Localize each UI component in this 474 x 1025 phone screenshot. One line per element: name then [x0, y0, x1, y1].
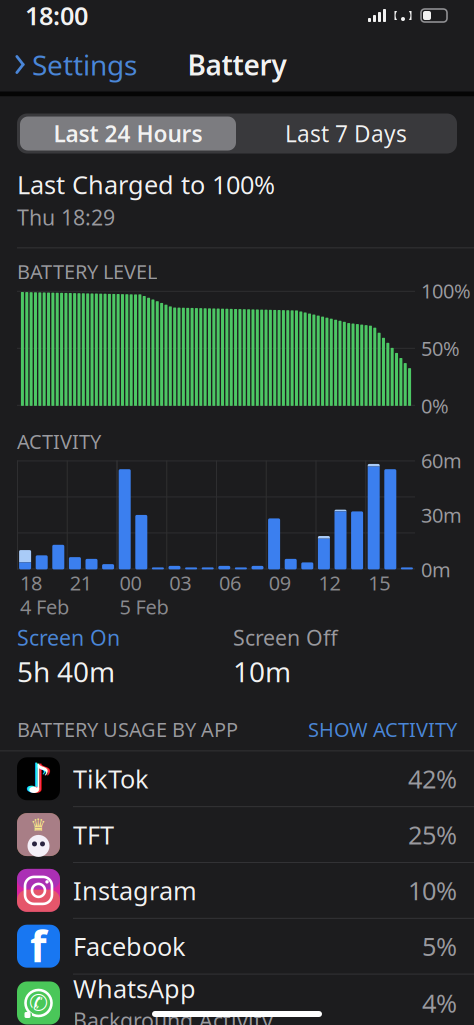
staticText: 25% — [408, 818, 457, 851]
staticText: Battery — [187, 46, 286, 83]
staticText: TikTok — [73, 762, 149, 796]
button[interactable]: Last 24 Hours — [20, 116, 236, 150]
staticText: 21 — [70, 569, 92, 596]
staticText: 4% — [422, 986, 457, 1020]
staticText: 10% — [408, 874, 457, 907]
staticText: BATTERY USAGE BY APP — [17, 716, 238, 742]
staticText: 18 — [20, 569, 42, 596]
staticText: 18:00 — [25, 0, 88, 32]
button[interactable]: ♪ — [0, 751, 474, 806]
staticText: Instagram — [73, 874, 197, 907]
staticText: Last 7 Days — [285, 118, 407, 149]
staticText: 09 — [269, 569, 291, 596]
staticText: 50% — [421, 335, 460, 362]
button[interactable]: f — [0, 918, 474, 974]
button[interactable]: ♛ — [0, 806, 474, 862]
staticText: Background Activity — [73, 1006, 273, 1025]
staticText: 00 — [119, 569, 141, 596]
staticText: ♪ — [23, 755, 49, 800]
staticText: Facebook — [73, 929, 186, 963]
staticText: 5 Feb — [119, 593, 168, 620]
staticText: Screen Off — [233, 623, 338, 652]
staticText: TFT — [73, 818, 114, 851]
button[interactable]: SHOW ACTIVITY — [308, 716, 457, 742]
staticText: WhatsApp — [73, 971, 196, 1005]
staticText: Screen On — [17, 623, 120, 652]
button[interactable]: Last 7 Days — [238, 116, 454, 150]
staticText: ✆ — [29, 990, 48, 1016]
staticText: ACTIVITY — [17, 428, 101, 454]
staticText: ♪ — [25, 756, 51, 801]
staticText: 06 — [219, 569, 241, 596]
staticText: 0% — [421, 393, 449, 419]
staticText: ♪ — [27, 756, 53, 801]
staticText: 12 — [318, 569, 340, 596]
staticText: Settings — [32, 46, 137, 83]
staticText: f — [30, 917, 47, 974]
staticText: ♛ — [30, 815, 46, 835]
staticText: 15 — [368, 569, 390, 596]
staticText: 5h 40m — [17, 653, 115, 690]
staticText: 10m — [233, 653, 291, 690]
button[interactable]: Instagram — [0, 862, 474, 918]
button[interactable]: Settings — [3, 40, 147, 89]
staticText: Last Charged to 100% — [17, 167, 275, 201]
staticText: 0m — [421, 556, 451, 583]
staticText: 100% — [421, 278, 471, 304]
staticText: BATTERY LEVEL — [17, 258, 157, 285]
staticText: 42% — [408, 762, 457, 796]
staticText: 30m — [421, 502, 462, 528]
staticText: 5% — [422, 929, 457, 963]
staticText: Last 24 Hours — [53, 118, 202, 149]
staticText: 03 — [169, 569, 191, 596]
staticText: SHOW ACTIVITY — [308, 716, 457, 742]
staticText: 4 Feb — [20, 593, 69, 620]
button[interactable]: ✆ — [0, 974, 474, 1025]
staticText: 60m — [421, 447, 462, 474]
staticText: Thu 18:29 — [17, 203, 115, 231]
